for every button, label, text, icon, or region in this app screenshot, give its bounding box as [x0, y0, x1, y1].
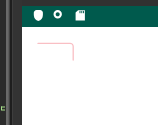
button[interactable]: Security: [24, 6, 53, 27]
button[interactable]: Record: [48, 6, 67, 27]
button[interactable]: Storage: [68, 6, 89, 27]
